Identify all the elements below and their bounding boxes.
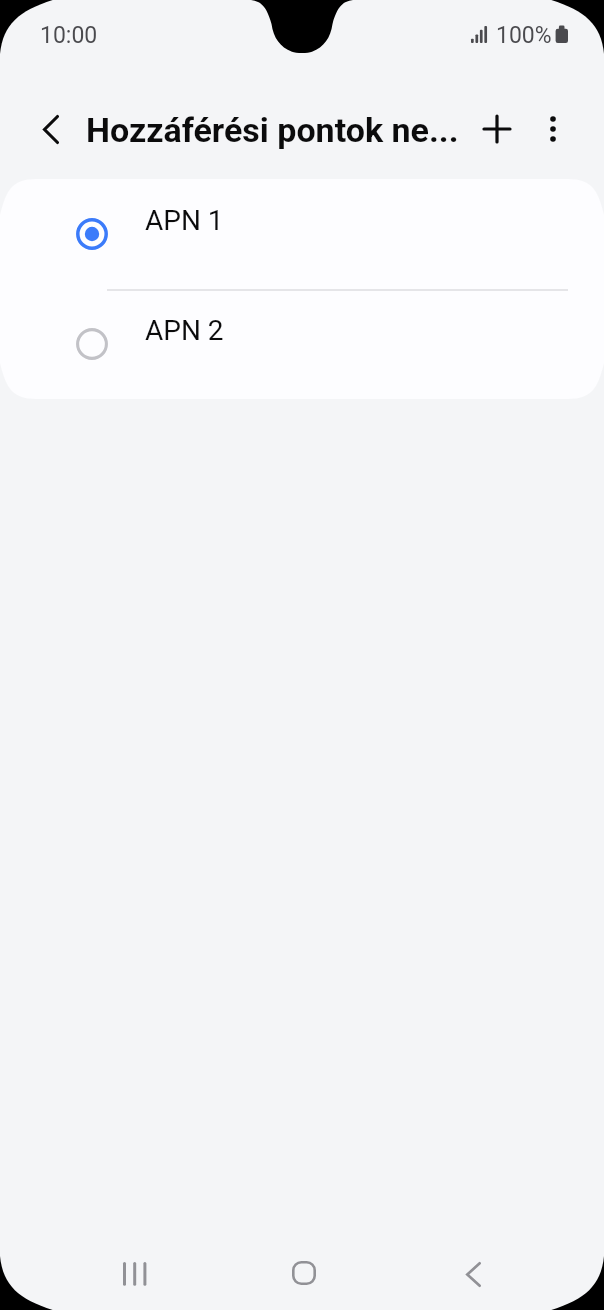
button[interactable]: Home [269,1242,339,1304]
button[interactable]: More options [531,104,575,154]
staticText: 100% [496,22,552,49]
button[interactable]: APN 2 [0,289,604,399]
button[interactable]: Back [25,106,77,152]
staticText: APN 2 [145,314,224,347]
button[interactable]: APN 1 [0,179,604,289]
button[interactable]: Back [438,1243,508,1305]
button[interactable]: Add [474,104,520,154]
staticText: Hozzáférési pontok ne... [86,110,459,150]
staticText: APN 1 [145,204,224,237]
staticText: 10:00 [40,22,98,49]
button[interactable]: Recents [99,1243,169,1305]
